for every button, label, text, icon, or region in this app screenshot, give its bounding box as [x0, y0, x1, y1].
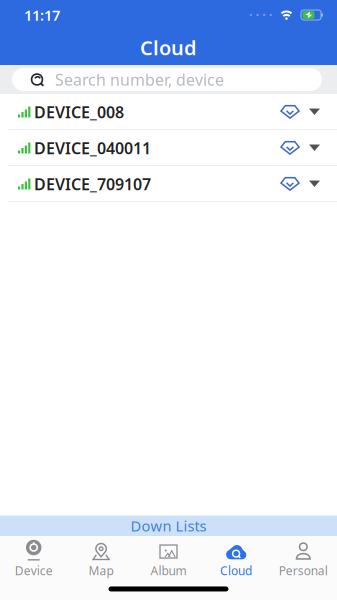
staticText: DEVICE_008	[34, 101, 124, 123]
staticText: Map	[89, 562, 114, 578]
staticText: Personal	[279, 562, 328, 578]
button[interactable]: Down Lists	[0, 515, 337, 536]
staticText: Cloud	[140, 34, 197, 61]
staticText: Device	[15, 562, 53, 578]
staticText: 11:17	[24, 5, 60, 25]
staticText: Album	[150, 562, 186, 578]
button[interactable]: Device	[0, 542, 67, 578]
button[interactable]: DEVICE_008	[0, 94, 337, 130]
staticText: DEVICE_709107	[34, 173, 151, 195]
staticText: Cloud	[220, 562, 252, 578]
button[interactable]: Map	[67, 542, 135, 578]
button[interactable]: Personal	[270, 542, 337, 578]
staticText: DEVICE_040011	[34, 137, 151, 159]
button[interactable]: Album	[135, 542, 202, 578]
staticText: Search number, device	[55, 69, 224, 90]
staticText: Down Lists	[130, 516, 206, 535]
button[interactable]: Search number, device	[0, 68, 337, 91]
button[interactable]: DEVICE_040011	[0, 130, 337, 166]
button[interactable]: DEVICE_709107	[0, 166, 337, 202]
button[interactable]: Cloud	[202, 542, 270, 578]
